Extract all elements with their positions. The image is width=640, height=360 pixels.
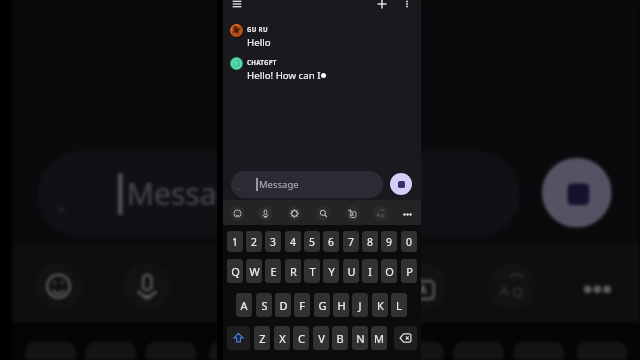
button[interactable]: Q [227, 259, 243, 283]
button[interactable]: Menu [223, 0, 251, 18]
button[interactable]: 9 [513, 342, 564, 360]
button[interactable]: Voice input [258, 206, 273, 221]
button[interactable]: Voice input [123, 262, 171, 310]
button[interactable]: P [401, 259, 417, 283]
button[interactable]: Emoji [35, 262, 82, 310]
staticText: CHATGPT [247, 58, 277, 66]
staticText: I [368, 264, 372, 279]
button[interactable]: V [313, 326, 329, 350]
button[interactable]: More options [393, 0, 421, 18]
button[interactable]: X [274, 326, 290, 350]
button[interactable]: 1 [25, 342, 76, 360]
button[interactable]: 4 [285, 231, 301, 252]
button[interactable]: O [381, 259, 397, 283]
button[interactable]: 3 [146, 342, 196, 360]
button[interactable]: Backspace [394, 326, 417, 350]
staticText: 4 [290, 235, 296, 249]
button[interactable]: W [246, 259, 262, 283]
button[interactable]: L [391, 293, 407, 317]
button[interactable]: 8 [362, 231, 378, 252]
button[interactable]: U [343, 259, 359, 283]
button[interactable]: Keyboard settings [215, 262, 263, 310]
button[interactable]: M [371, 326, 387, 350]
staticText: H [337, 298, 346, 313]
staticText: J [358, 298, 362, 313]
staticText: D [279, 298, 288, 313]
button[interactable]: G [314, 293, 330, 317]
button[interactable]: Stop generating [390, 173, 412, 195]
staticText: 8 [367, 235, 373, 249]
button[interactable]: 9 [381, 231, 397, 252]
button[interactable]: Keyboard settings [287, 206, 302, 221]
button[interactable]: 1 [227, 231, 243, 252]
button[interactable]: 6 [323, 231, 339, 252]
staticText: G [318, 298, 327, 313]
button[interactable]: 2 [85, 342, 136, 360]
button[interactable]: 0 [401, 231, 417, 252]
button[interactable]: 2 [246, 231, 262, 252]
button[interactable]: 8 [453, 342, 504, 360]
staticText: 2 [251, 235, 257, 249]
button[interactable]: B [332, 326, 348, 350]
button[interactable]: 6 [329, 342, 380, 360]
staticText: 7 [409, 354, 428, 360]
button[interactable]: Search [316, 206, 331, 221]
button[interactable]: D [275, 293, 291, 317]
staticText: T [309, 264, 316, 279]
staticText: F [299, 298, 305, 313]
staticText: 5 [309, 235, 315, 249]
staticText: 6 [328, 235, 334, 249]
button[interactable]: Stop generating [542, 158, 612, 227]
button[interactable]: E [265, 259, 281, 283]
button[interactable]: F [294, 293, 310, 317]
button[interactable]: 5 [304, 231, 320, 252]
button[interactable]: More keyboard options [574, 262, 621, 310]
button[interactable]: A [236, 293, 252, 317]
button[interactable]: More keyboard options [400, 206, 415, 221]
button[interactable]: R [285, 259, 301, 283]
button[interactable]: Translate [399, 262, 447, 310]
button[interactable]: N [352, 326, 368, 350]
staticText: Message [127, 174, 253, 215]
button[interactable]: S [256, 293, 272, 317]
staticText: R [290, 264, 297, 279]
button[interactable]: Emoji [230, 206, 245, 221]
button[interactable]: Stickers [373, 206, 388, 221]
button[interactable]: I [362, 259, 378, 283]
button[interactable]: J [352, 293, 368, 317]
staticText: K [377, 298, 384, 313]
button[interactable]: Message [38, 151, 520, 237]
button[interactable]: New chat [368, 0, 396, 18]
button[interactable]: H [333, 293, 349, 317]
button[interactable]: 5 [269, 342, 320, 360]
button[interactable]: K [372, 293, 388, 317]
staticText: Y [328, 264, 335, 279]
button[interactable]: Search [307, 262, 355, 310]
button[interactable]: 0 [577, 342, 627, 360]
staticText: M [374, 331, 384, 346]
button[interactable]: GU RU [230, 24, 410, 50]
button[interactable]: 7 [393, 342, 444, 360]
staticText: 0 [406, 235, 412, 249]
button[interactable]: Translate [345, 206, 360, 221]
button[interactable]: Stickers [488, 262, 536, 310]
button[interactable]: T [304, 259, 320, 283]
staticText: Message [259, 178, 299, 191]
staticText: 1 [232, 235, 238, 249]
button[interactable]: 7 [343, 231, 359, 252]
button[interactable]: Shift [227, 326, 250, 350]
button[interactable]: Message [231, 171, 383, 198]
staticText: B [336, 331, 344, 346]
button[interactable]: CHATGPT [230, 57, 410, 83]
button[interactable]: 3 [265, 231, 281, 252]
button[interactable]: Y [323, 259, 339, 283]
button[interactable]: Z [254, 326, 270, 350]
button[interactable]: C [293, 326, 309, 350]
staticText: L [396, 298, 402, 313]
staticText: U [347, 264, 356, 279]
button[interactable]: 4 [209, 342, 260, 360]
